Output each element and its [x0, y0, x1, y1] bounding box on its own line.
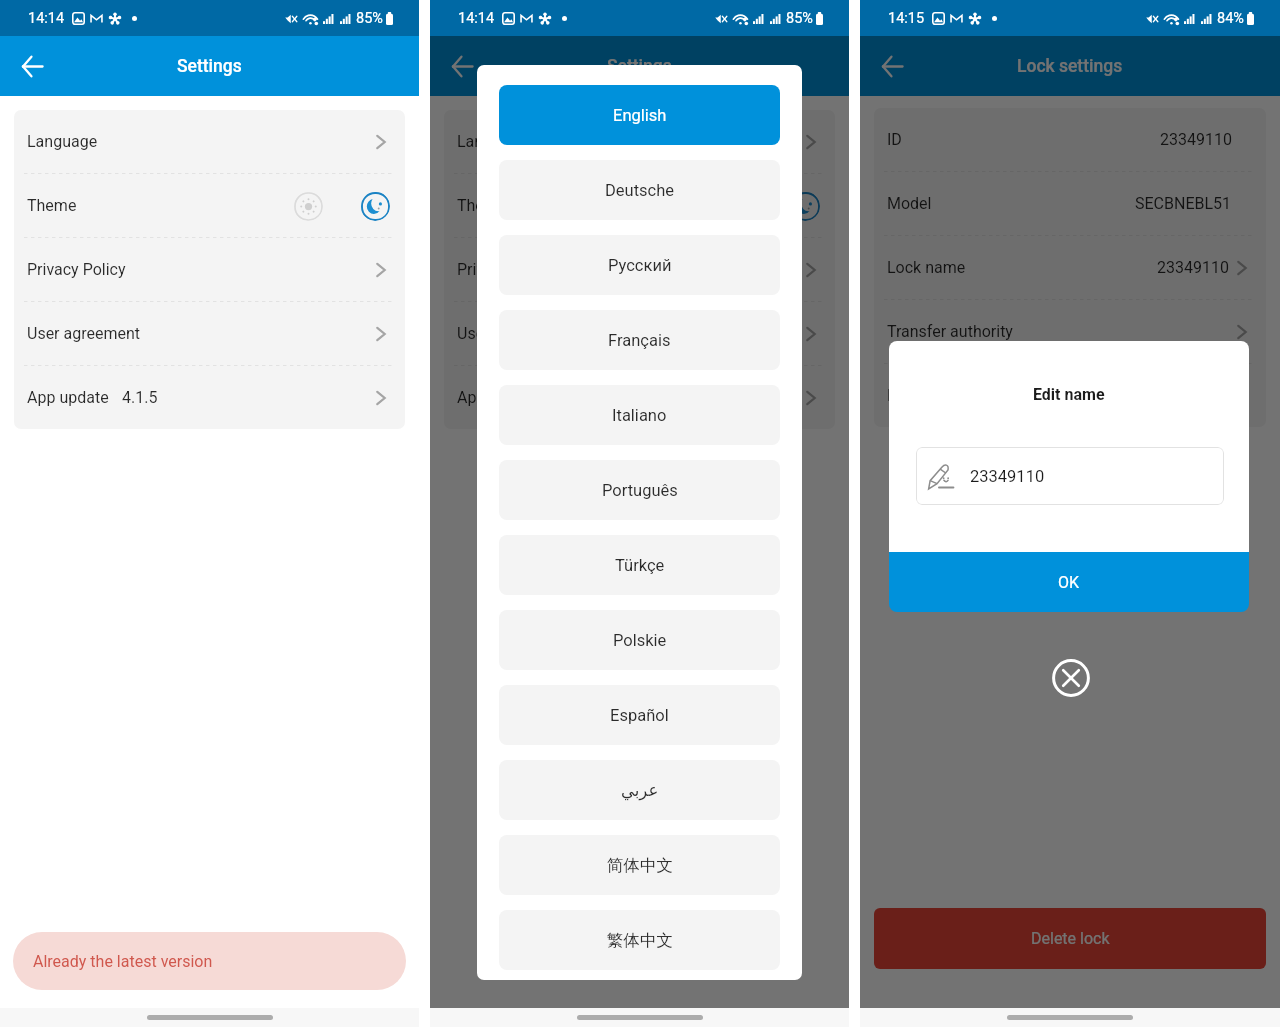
button[interactable]: Türkçe	[499, 535, 780, 595]
button[interactable]: Privacy Policy	[444, 238, 835, 301]
staticText: عربي	[621, 781, 659, 800]
staticText: Language	[457, 132, 528, 151]
staticText: User agreement	[27, 324, 141, 343]
button[interactable]: Back	[438, 42, 486, 90]
staticText: 23349110	[1160, 130, 1232, 149]
button[interactable]: Privacy Policy	[14, 238, 405, 301]
staticText: 84%	[1217, 10, 1244, 27]
staticText: Already the latest version	[33, 952, 213, 971]
staticText: 23349110	[1157, 258, 1229, 277]
button[interactable]: Language	[444, 110, 835, 173]
button[interactable]: Français	[499, 310, 780, 370]
staticText: Edit name	[1033, 385, 1105, 404]
staticText: English	[613, 106, 667, 125]
staticText: Lock name	[887, 258, 966, 277]
staticText: Polskie	[613, 631, 667, 650]
button[interactable]: Reset	[874, 364, 1266, 427]
staticText: 23349110	[970, 467, 1045, 486]
staticText: Theme	[457, 196, 507, 215]
staticText: Deutsche	[605, 181, 675, 200]
staticText: Delete lock	[1031, 929, 1110, 948]
staticText: Türkçe	[615, 556, 665, 575]
staticText: 14:14	[28, 10, 65, 27]
staticText: 85%	[356, 10, 383, 27]
staticText: 14:15	[888, 10, 925, 27]
staticText: 14:14	[458, 10, 495, 27]
button[interactable]: OK	[889, 552, 1249, 612]
button[interactable]: 繁体中文	[499, 910, 780, 970]
button[interactable]: Lock name	[874, 236, 1266, 299]
staticText: Privacy Policy	[27, 260, 126, 279]
staticText: App update	[27, 388, 109, 407]
button[interactable]: User agreement	[444, 302, 835, 365]
button[interactable]: Español	[499, 685, 780, 745]
button[interactable]: Português	[499, 460, 780, 520]
button[interactable]: Transfer authority	[874, 300, 1266, 363]
staticText: Italiano	[612, 406, 667, 425]
button[interactable]: Model	[874, 172, 1266, 235]
staticText: 85%	[786, 10, 813, 27]
staticText: SECBNEBL51	[1135, 194, 1232, 213]
button[interactable]: Italiano	[499, 385, 780, 445]
staticText: Settings	[607, 56, 672, 77]
button[interactable]: Deutsche	[499, 160, 780, 220]
staticText: Français	[608, 331, 671, 350]
staticText: Language	[27, 132, 98, 151]
button[interactable]: Polskie	[499, 610, 780, 670]
staticText: OK	[1058, 573, 1080, 592]
staticText: Transfer authority	[887, 322, 1013, 341]
staticText: Русский	[608, 256, 672, 275]
button[interactable]: عربي	[499, 760, 780, 820]
button[interactable]: App update	[444, 366, 835, 429]
staticText: User agreement	[457, 324, 571, 343]
button[interactable]: App update	[14, 366, 405, 429]
button[interactable]: Close	[1050, 657, 1091, 698]
button[interactable]: 23349110	[916, 447, 1224, 505]
staticText: 简体中文	[607, 855, 673, 876]
staticText: Model	[887, 194, 932, 213]
button[interactable]: Русский	[499, 235, 780, 295]
staticText: 繁体中文	[607, 930, 673, 951]
button[interactable]: Dark theme	[790, 191, 820, 221]
button[interactable]: English	[499, 85, 780, 145]
button[interactable]: Back	[8, 42, 56, 90]
button[interactable]: Language	[14, 110, 405, 173]
button[interactable]: Delete lock	[874, 908, 1266, 969]
staticText: Reset	[887, 386, 928, 405]
button[interactable]: Back	[868, 42, 916, 90]
staticText: Lock settings	[1017, 56, 1123, 77]
staticText: Settings	[177, 56, 242, 77]
staticText: Português	[602, 481, 678, 500]
button[interactable]: Light theme	[293, 191, 323, 221]
staticText: Theme	[27, 196, 77, 215]
staticText: App update	[457, 388, 539, 407]
staticText: Español	[610, 706, 669, 725]
button[interactable]: 简体中文	[499, 835, 780, 895]
button[interactable]: Dark theme	[360, 191, 390, 221]
staticText: ID	[887, 130, 902, 149]
staticText: Privacy Policy	[457, 260, 556, 279]
button[interactable]: ID	[874, 108, 1266, 171]
button[interactable]: User agreement	[14, 302, 405, 365]
staticText: 4.1.5	[122, 388, 158, 407]
